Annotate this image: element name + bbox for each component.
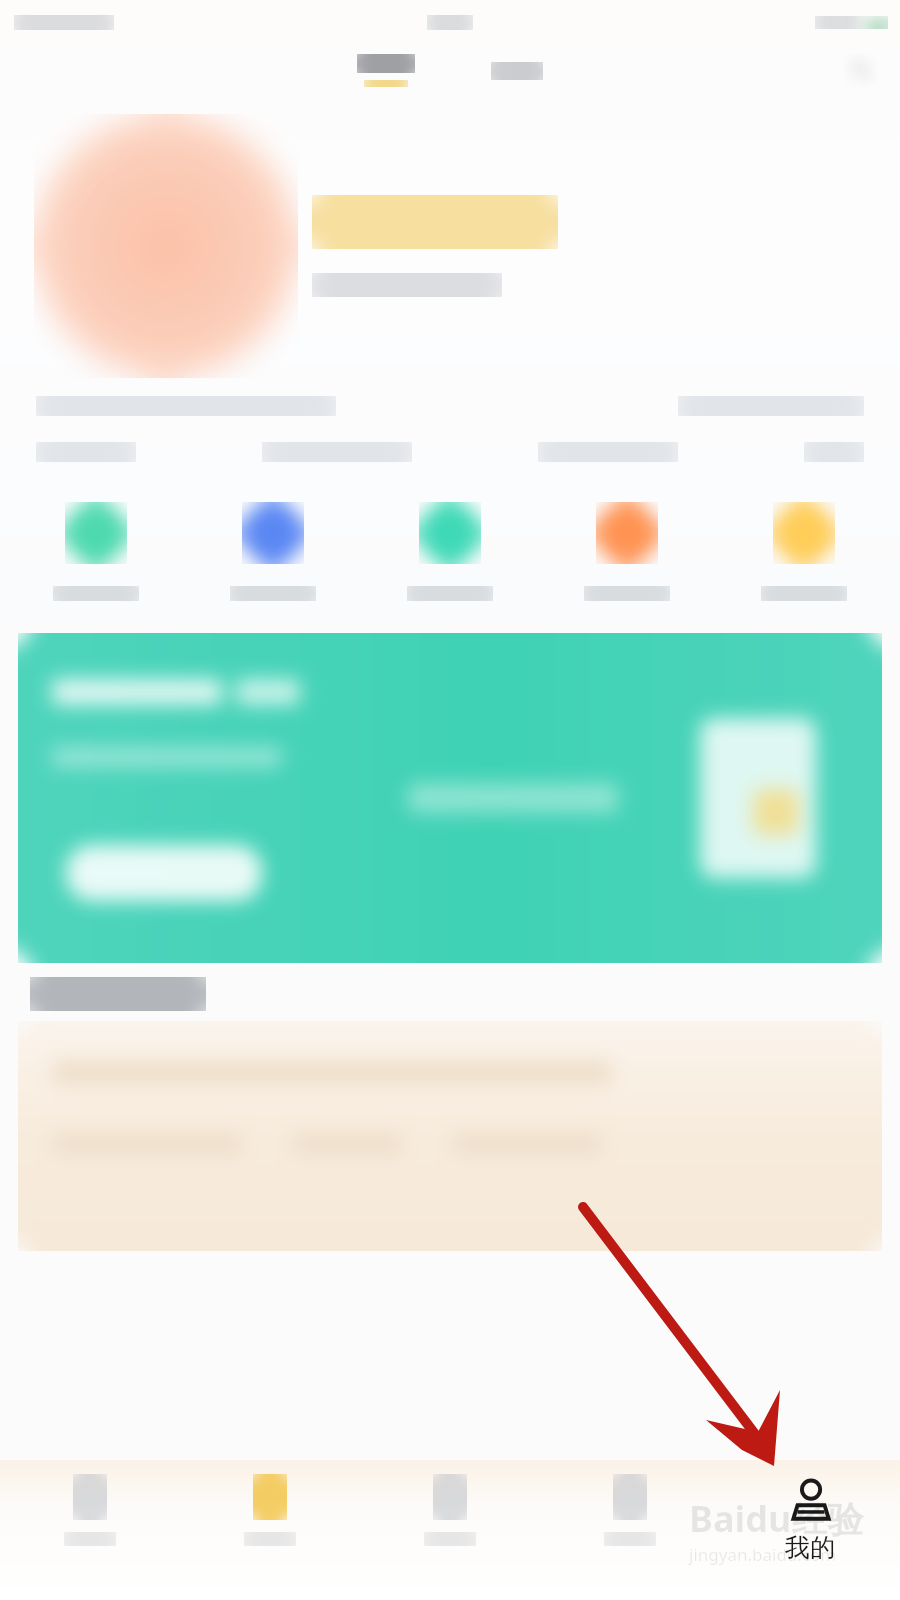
staticText: jingyan.baidu.com <box>689 1543 837 1566</box>
button[interactable]: Quick action <box>184 496 361 607</box>
button[interactable]: Tab 1 <box>0 1474 180 1600</box>
button[interactable]: Tab 3 <box>360 1474 540 1600</box>
button[interactable] <box>66 845 262 901</box>
button[interactable]: Quick action <box>538 496 715 607</box>
button[interactable] <box>18 633 882 963</box>
button[interactable]: Tab 2 <box>180 1474 360 1600</box>
button[interactable]: Quick action <box>8 496 184 607</box>
button[interactable]: 我的 <box>720 1474 900 1600</box>
button[interactable] <box>18 1021 882 1251</box>
button[interactable]: Tab 4 <box>540 1474 720 1600</box>
button[interactable] <box>343 50 429 91</box>
staticText: Baidu经验 <box>689 1494 864 1543</box>
button[interactable]: Search <box>844 53 878 87</box>
button[interactable]: Quick action <box>361 496 538 607</box>
staticText: 我的 <box>785 1532 835 1563</box>
button[interactable]: Quick action <box>715 496 892 607</box>
button[interactable] <box>477 58 557 84</box>
button[interactable] <box>0 96 900 396</box>
